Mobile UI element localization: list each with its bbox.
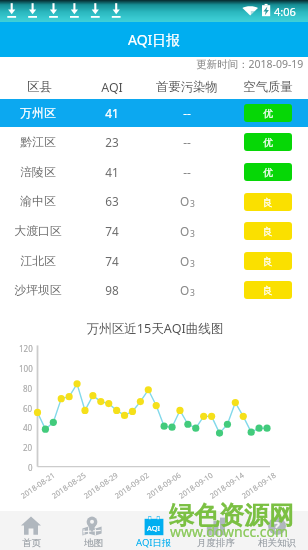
staticText: 80 xyxy=(23,383,33,394)
staticText: 74 xyxy=(105,253,119,269)
staticText: 首页 xyxy=(22,537,41,549)
staticText: 41 xyxy=(105,164,119,180)
staticText: 月度排序 xyxy=(197,537,235,549)
staticText: -- xyxy=(183,164,191,180)
staticText: 2018-09-14 xyxy=(208,469,246,500)
staticText: 良 xyxy=(263,196,273,209)
staticText: 万州区 xyxy=(20,106,56,121)
staticText: 3 xyxy=(190,287,195,299)
button[interactable] xyxy=(123,511,185,550)
button[interactable] xyxy=(0,511,62,550)
staticText: 41 xyxy=(105,105,119,121)
staticText: 渝中区 xyxy=(20,194,56,209)
staticText: 2018-08-29 xyxy=(82,469,120,500)
button[interactable]: 良 xyxy=(244,222,292,240)
staticText: 区县 xyxy=(27,79,52,95)
staticText: 3 xyxy=(190,228,195,240)
button[interactable]: 良 xyxy=(244,281,292,299)
button[interactable]: 良 xyxy=(244,193,292,211)
button[interactable] xyxy=(62,511,124,550)
staticText: 良 xyxy=(263,284,273,297)
staticText: AQI xyxy=(101,79,123,96)
staticText: 万州区近15天AQI曲线图 xyxy=(86,320,224,337)
staticText: 优 xyxy=(263,136,273,149)
staticText: O xyxy=(180,193,190,209)
button[interactable] xyxy=(0,276,308,304)
staticText: 4:06 xyxy=(274,4,296,19)
staticText: O xyxy=(180,223,190,239)
staticText: -- xyxy=(183,134,191,150)
staticText: 更新时间：2018-09-19 xyxy=(196,57,304,71)
button[interactable]: 优 xyxy=(244,104,292,122)
staticText: 优 xyxy=(263,107,273,120)
staticText: 3 xyxy=(190,258,195,270)
staticText: 0 xyxy=(28,462,33,473)
button[interactable]: 优 xyxy=(244,133,292,151)
staticText: 120 xyxy=(19,343,33,354)
button[interactable]: 优 xyxy=(244,163,292,181)
button[interactable] xyxy=(0,217,308,245)
button[interactable] xyxy=(0,158,308,186)
staticText: 98 xyxy=(105,282,119,298)
staticText: 优 xyxy=(263,166,273,179)
staticText: 良 xyxy=(263,225,273,238)
staticText: 63 xyxy=(105,193,119,209)
staticText: 黔江区 xyxy=(20,135,56,150)
staticText: AQI日报 xyxy=(136,536,172,549)
staticText: 20 xyxy=(23,442,33,453)
staticText: 沙坪坝区 xyxy=(14,283,62,298)
staticText: 3 xyxy=(190,198,195,210)
staticText: 相关知识 xyxy=(258,537,296,549)
staticText: 2018-08-21 xyxy=(19,469,57,500)
staticText: AQI日报 xyxy=(128,30,181,49)
button[interactable] xyxy=(185,511,247,550)
staticText: 2018-09-18 xyxy=(240,469,278,500)
staticText: AQI xyxy=(147,523,161,533)
staticText: 空气质量 xyxy=(243,79,293,95)
staticText: O xyxy=(180,282,190,298)
staticText: 大渡口区 xyxy=(14,224,62,239)
staticText: 涪陵区 xyxy=(20,165,56,180)
staticText: 2018-09-06 xyxy=(145,469,183,500)
staticText: ? xyxy=(274,518,280,534)
staticText: 绿色资源网 xyxy=(169,500,294,531)
button[interactable]: 良 xyxy=(244,252,292,270)
staticText: www.downcc.com xyxy=(170,522,289,541)
staticText: 地图 xyxy=(84,537,103,549)
staticText: 良 xyxy=(263,255,273,268)
button[interactable] xyxy=(0,128,308,156)
staticText: 23 xyxy=(105,134,119,150)
button[interactable] xyxy=(0,99,308,127)
staticText: 首要污染物 xyxy=(156,79,218,95)
staticText: 2018-09-02 xyxy=(113,469,151,500)
staticText: 江北区 xyxy=(20,254,56,269)
staticText: 60 xyxy=(23,403,33,414)
staticText: -- xyxy=(183,105,191,121)
staticText: O xyxy=(180,253,190,269)
button[interactable] xyxy=(0,247,308,275)
staticText: 100 xyxy=(19,363,33,374)
staticText: 74 xyxy=(105,223,119,239)
staticText: 40 xyxy=(23,422,33,433)
button[interactable] xyxy=(246,511,308,550)
button[interactable] xyxy=(0,187,308,215)
button[interactable]: AQI日报 xyxy=(0,22,308,57)
staticText: 2018-09-10 xyxy=(177,469,215,500)
staticText: 2018-08-25 xyxy=(50,469,88,500)
